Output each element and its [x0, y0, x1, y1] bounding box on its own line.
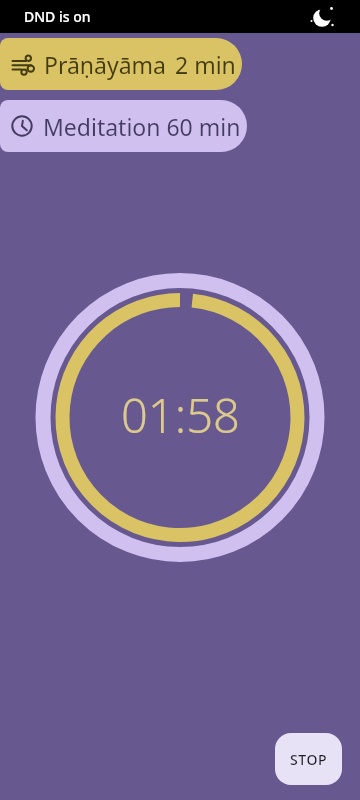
staticText: DND is on — [24, 7, 91, 26]
button[interactable]: Meditation 60 min — [0, 100, 247, 152]
button[interactable]: Prāṇāyāma — [0, 38, 242, 90]
staticText: Prāṇāyāma — [44, 49, 167, 80]
staticText: STOP — [290, 750, 328, 769]
staticText: 2 min — [175, 49, 236, 80]
button[interactable]: STOP — [275, 733, 342, 785]
staticText: Meditation 60 min — [43, 111, 241, 142]
staticText: 01:58 — [121, 383, 240, 447]
